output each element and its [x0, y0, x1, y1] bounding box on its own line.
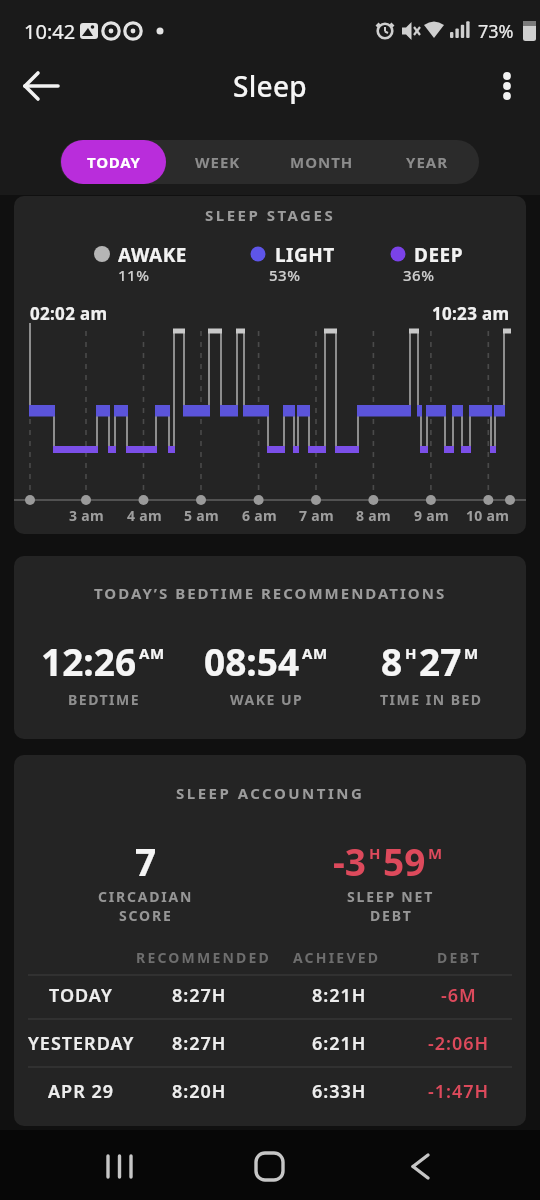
- button[interactable]: [90, 1136, 150, 1194]
- staticText: M: [428, 843, 443, 863]
- staticText: -1:47H: [428, 1079, 490, 1104]
- staticText: 8:20H: [172, 1079, 227, 1104]
- staticText: 36%: [403, 265, 435, 285]
- button[interactable]: [14, 64, 66, 108]
- staticText: TODAY’S BEDTIME RECOMMENDATIONS: [94, 583, 447, 603]
- staticText: 53%: [269, 265, 301, 285]
- staticText: 27: [419, 636, 462, 686]
- staticText: CIRCADIAN: [98, 887, 194, 906]
- staticText: -3: [333, 836, 367, 886]
- staticText: -2:06H: [428, 1031, 490, 1056]
- button[interactable]: MONTH: [282, 140, 362, 184]
- staticText: BEDTIME: [68, 690, 141, 709]
- staticText: RECOMMENDED: [136, 948, 271, 967]
- staticText: 7 am: [299, 506, 334, 525]
- staticText: ACHIEVED: [293, 948, 381, 967]
- staticText: LIGHT: [275, 242, 335, 266]
- staticText: 02:02 am: [30, 302, 108, 325]
- staticText: DEEP: [414, 242, 463, 266]
- staticText: 5 am: [184, 506, 219, 525]
- staticText: TODAY: [87, 152, 141, 172]
- button[interactable]: [240, 1136, 300, 1194]
- staticText: H: [369, 843, 381, 863]
- staticText: MONTH: [290, 152, 354, 172]
- staticText: H: [405, 643, 417, 663]
- staticText: 7: [135, 836, 157, 886]
- staticText: 10:42: [24, 18, 76, 44]
- staticText: 12:26: [41, 636, 137, 686]
- staticText: 8:27H: [172, 983, 227, 1008]
- staticText: 8:27H: [172, 1031, 227, 1056]
- staticText: TIME IN BED: [380, 690, 483, 709]
- staticText: 73%: [478, 19, 514, 43]
- staticText: AM: [139, 643, 165, 663]
- staticText: SLEEP NET: [347, 887, 435, 906]
- button[interactable]: YEAR: [387, 140, 467, 184]
- staticText: DEBT: [370, 906, 413, 925]
- staticText: WAKE UP: [230, 690, 304, 709]
- staticText: 4 am: [127, 506, 162, 525]
- button[interactable]: WEEK: [178, 140, 258, 184]
- staticText: 08:54: [204, 636, 300, 686]
- staticText: 9 am: [414, 506, 449, 525]
- staticText: 8: [381, 636, 403, 686]
- staticText: YESTERDAY: [28, 1031, 135, 1056]
- staticText: 8:21H: [312, 983, 367, 1008]
- button[interactable]: [390, 1136, 450, 1194]
- staticText: 6 am: [242, 506, 277, 525]
- staticText: 59: [383, 836, 426, 886]
- staticText: Sleep: [233, 67, 307, 105]
- staticText: SLEEP STAGES: [205, 205, 336, 225]
- staticText: SCORE: [119, 906, 173, 925]
- staticText: SLEEP ACCOUNTING: [176, 783, 365, 803]
- staticText: 10:23 am: [432, 302, 510, 325]
- button[interactable]: TODAY’S BEDTIME RECOMMENDATIONS: [14, 556, 526, 739]
- button[interactable]: TODAY: [61, 140, 166, 184]
- staticText: 6:33H: [312, 1079, 367, 1104]
- staticText: AM: [302, 643, 328, 663]
- staticText: AWAKE: [118, 242, 187, 266]
- staticText: -6M: [441, 983, 477, 1008]
- staticText: WEEK: [195, 152, 241, 172]
- staticText: 8 am: [356, 506, 391, 525]
- button[interactable]: SLEEP STAGES: [14, 196, 526, 534]
- staticText: TODAY: [49, 983, 113, 1008]
- staticText: 6:21H: [312, 1031, 367, 1056]
- staticText: 11%: [118, 265, 150, 285]
- button[interactable]: SLEEP ACCOUNTING: [14, 755, 526, 1126]
- staticText: 10 am: [466, 506, 510, 525]
- staticText: APR 29: [48, 1079, 115, 1104]
- staticText: M: [464, 643, 479, 663]
- button[interactable]: [488, 64, 526, 108]
- staticText: DEBT: [437, 948, 482, 967]
- staticText: YEAR: [406, 152, 449, 172]
- staticText: 3 am: [69, 506, 104, 525]
